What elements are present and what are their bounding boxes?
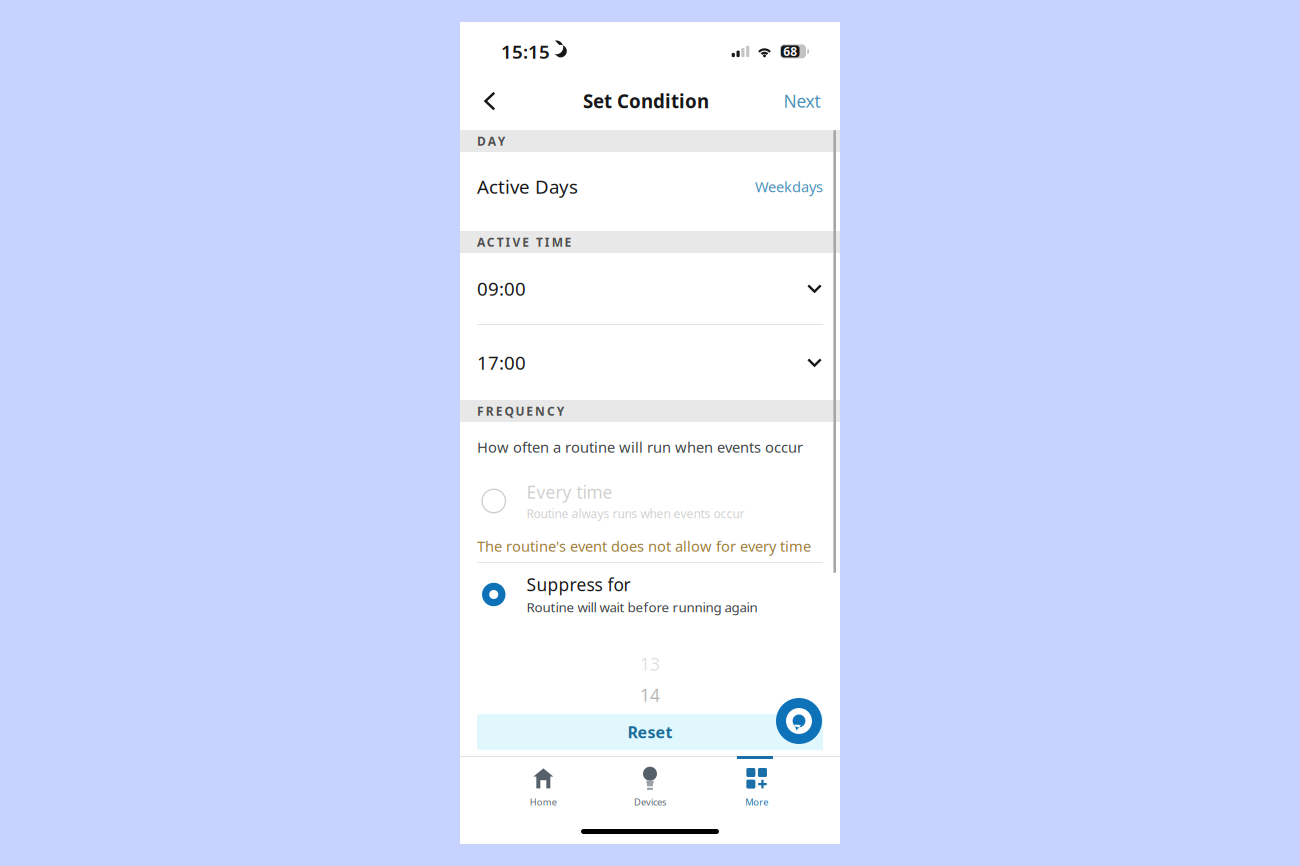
button[interactable]: 09:00 [460,253,840,324]
staticText: Weekdays [755,177,823,196]
staticText: Home [530,796,557,808]
staticText: The routine's event does not allow for e… [477,536,811,556]
staticText: Next [783,89,820,112]
staticText: How often a routine will run when events… [477,437,803,457]
button[interactable]: Every time [460,472,840,530]
staticText: 68 [783,43,797,59]
button[interactable]: More [703,759,810,808]
staticText: Routine will wait before running again [526,598,757,616]
staticText: FREQUENCY [477,403,565,419]
staticText: 15:15 [501,39,550,64]
button[interactable]: Active Days [460,152,840,231]
staticText: 13 [640,652,660,675]
button[interactable]: Reset [477,714,823,750]
staticText: Active Days [477,174,578,199]
staticText: Routine always runs when events occur [526,505,744,521]
staticText: More [745,796,768,808]
staticText: ACTIVE TIME [477,234,571,250]
staticText: Devices [634,796,666,808]
button[interactable]: Home [490,759,597,808]
staticText: Suppress for [526,573,630,596]
button[interactable]: Back [470,79,510,123]
button[interactable]: Next [782,79,822,123]
button[interactable]: Suppress for [460,563,840,626]
button[interactable]: Talk to Alexa [776,698,822,744]
staticText: Set Condition [583,89,709,113]
staticText: Reset [627,721,672,743]
button[interactable]: 17:00 [460,325,840,400]
staticText: 14 [640,683,660,706]
staticText: DAY [477,133,506,149]
staticText: 17:00 [477,350,526,375]
button[interactable]: Devices [597,759,703,808]
staticText: Every time [526,480,612,503]
staticText: 09:00 [477,276,526,301]
